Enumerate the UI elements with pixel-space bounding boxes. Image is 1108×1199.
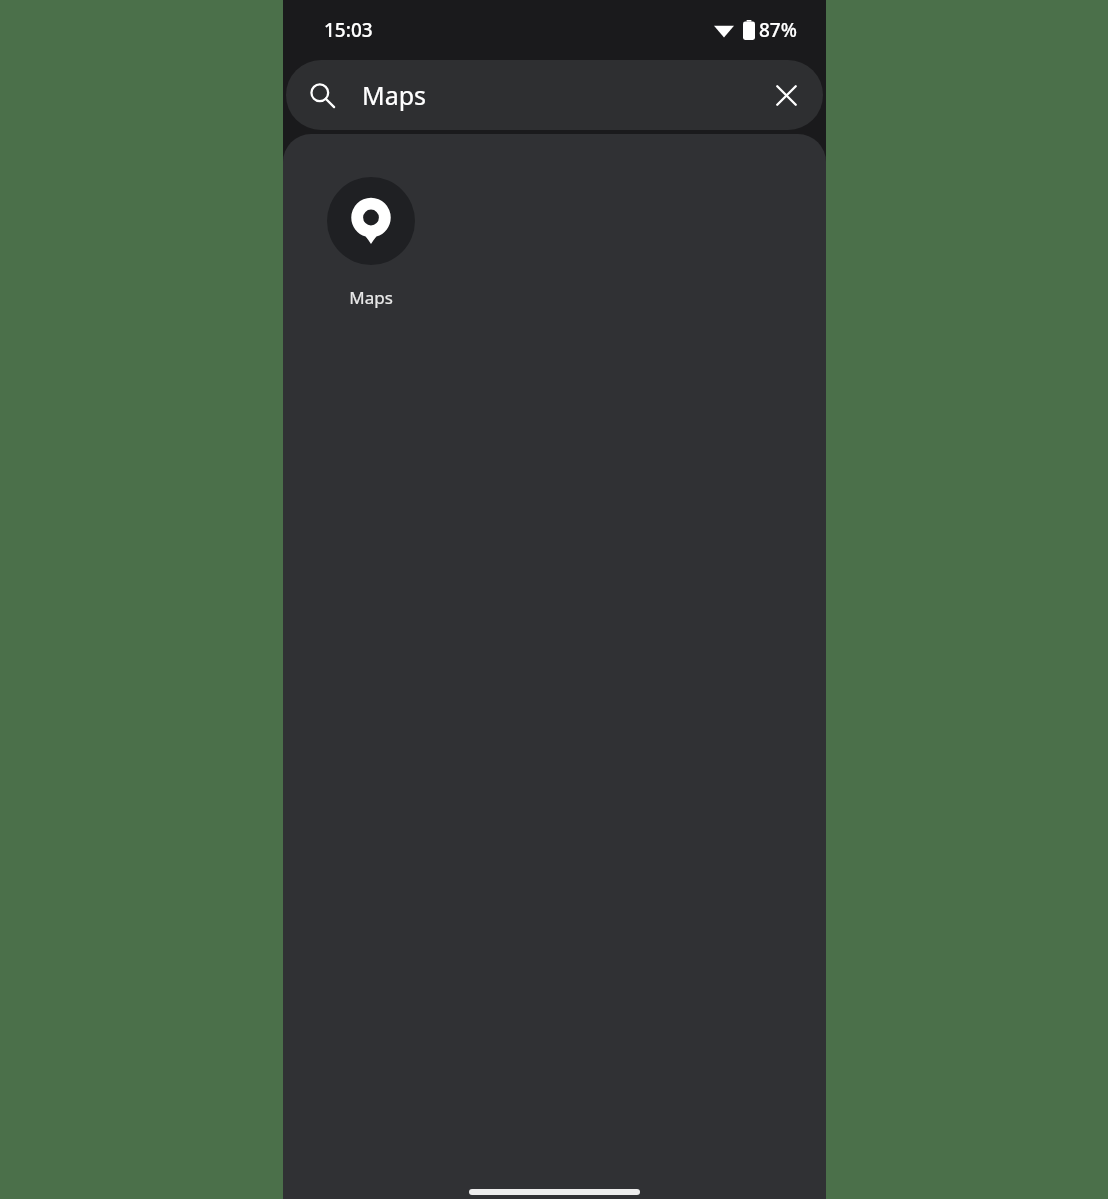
staticText: 87% [759,17,797,43]
button[interactable]: Maps [286,60,823,130]
staticText: 15:03 [324,17,373,43]
button[interactable]: Maps [307,164,434,322]
staticText: Maps [349,286,393,309]
button[interactable]: Clear search [758,67,814,123]
staticText: Maps [362,78,758,112]
